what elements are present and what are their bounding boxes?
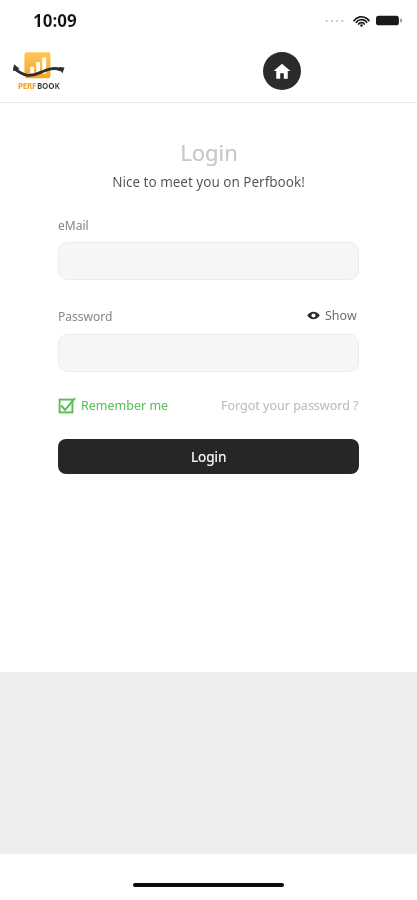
staticText: Password [58, 308, 113, 324]
staticText: Show [325, 307, 357, 324]
staticText: Login [191, 448, 227, 466]
button[interactable]: Home [263, 52, 301, 90]
staticText: Remember me [81, 397, 169, 414]
staticText: eMail [58, 217, 89, 233]
staticText: Nice to meet you on Perfbook! [112, 173, 305, 191]
button[interactable]: Remember me [58, 395, 169, 416]
button[interactable]: Perfbook home [13, 51, 65, 91]
staticText: 10:09 [33, 9, 77, 32]
button[interactable]: Login [58, 439, 359, 474]
staticText: BOOK [37, 80, 60, 91]
button[interactable]: Forgot your password ? [221, 395, 359, 416]
staticText: Login [180, 137, 238, 167]
staticText: Forgot your password ? [221, 397, 359, 414]
staticText: PERF [18, 80, 37, 91]
button[interactable]: Show [305, 305, 359, 326]
